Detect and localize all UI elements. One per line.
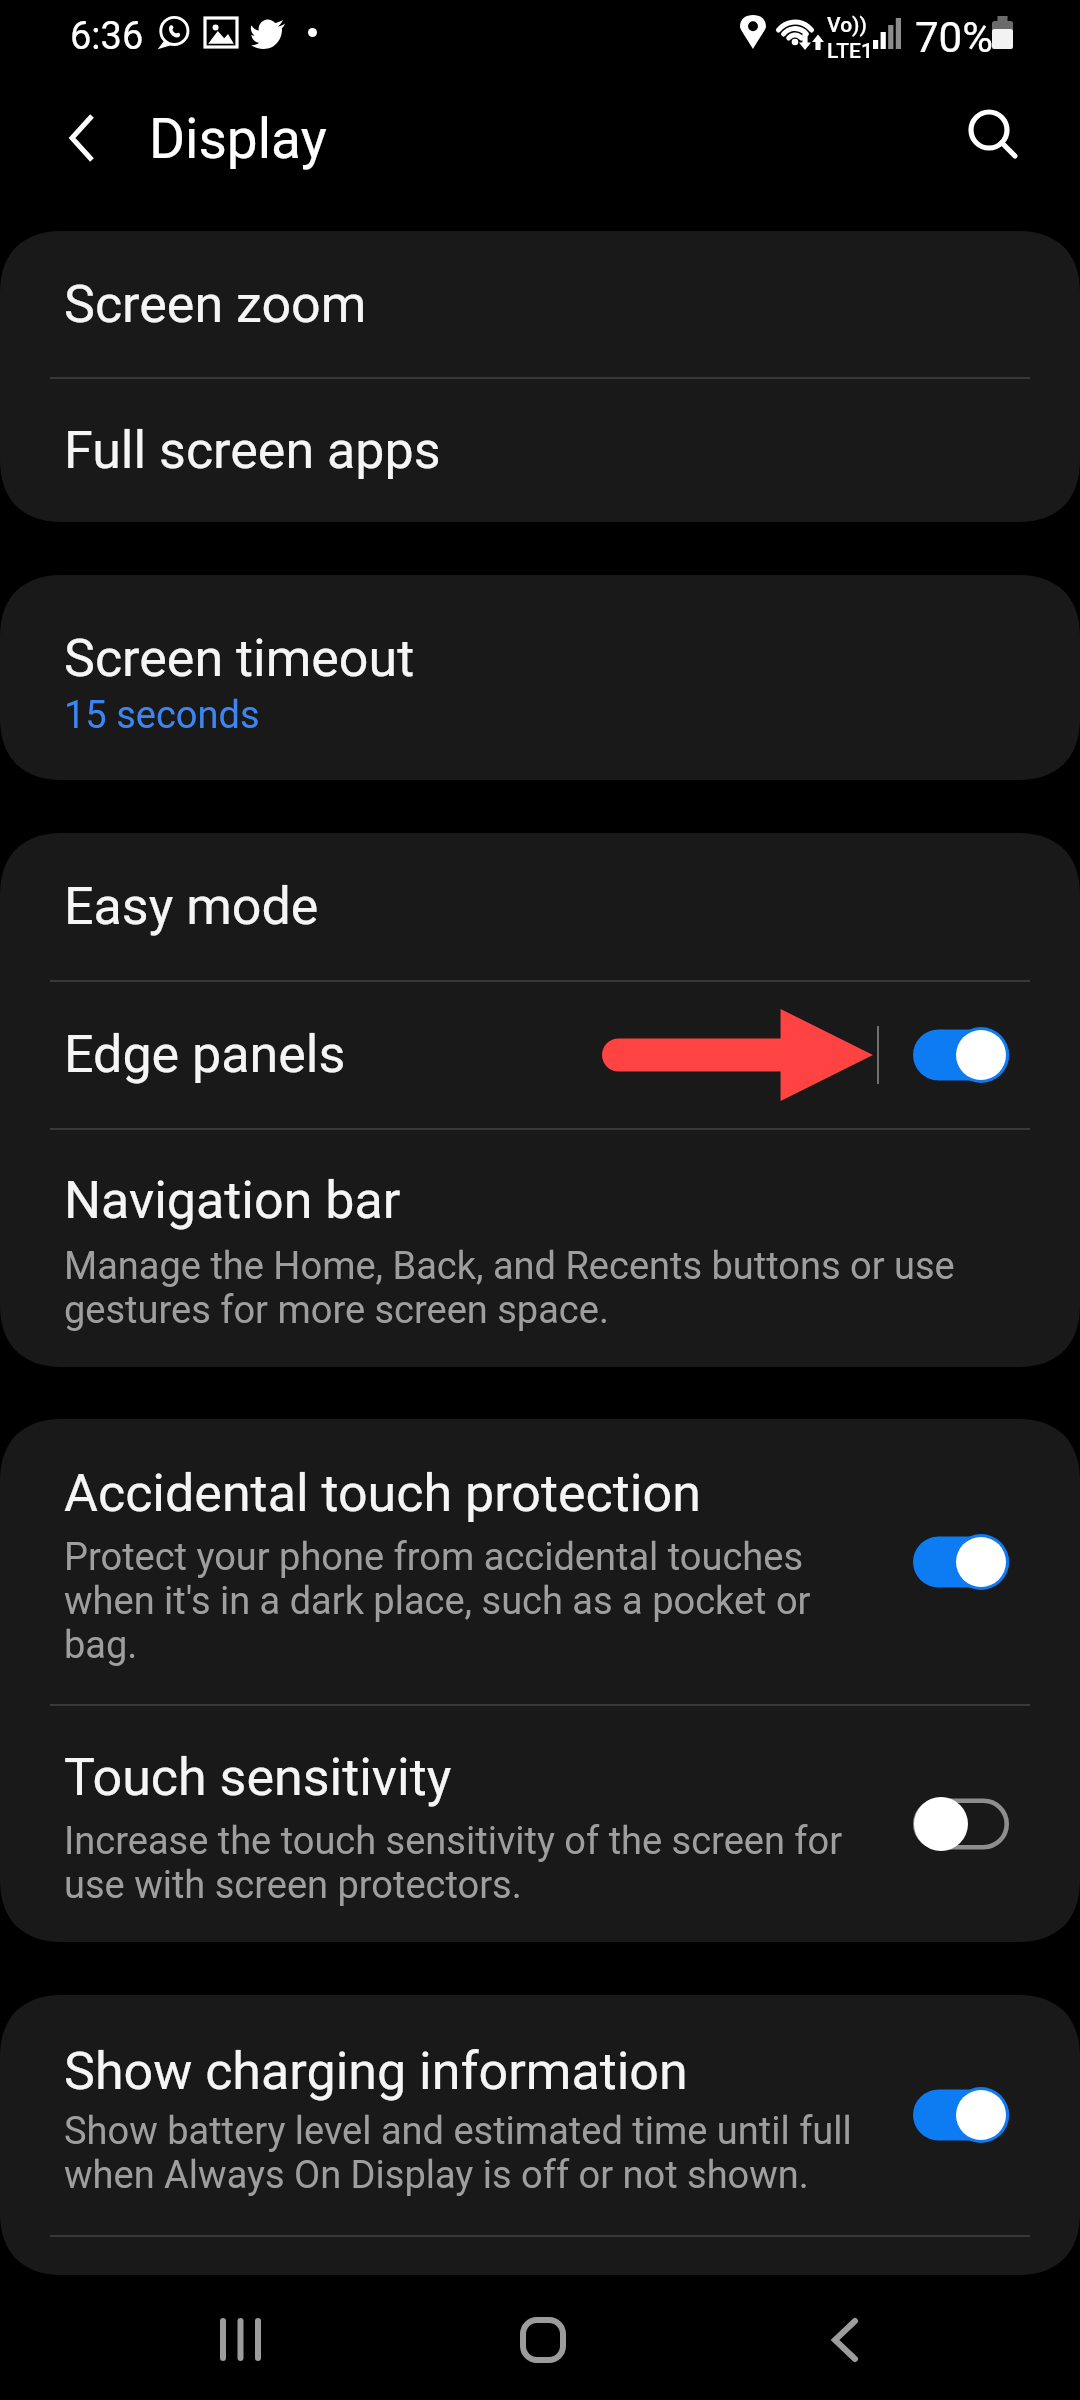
button[interactable]: Off [913, 1795, 1009, 1853]
staticText: Increase the touch sensitivity of the sc… [64, 1819, 843, 1907]
button[interactable]: Back [785, 2280, 905, 2400]
staticText: Full screen apps [64, 420, 441, 481]
button[interactable]: Home [483, 2280, 603, 2400]
staticText: Edge panels [64, 1024, 346, 1085]
button[interactable]: Full screen apps [0, 378, 1080, 522]
button[interactable]: Edge panels [0, 981, 1080, 1128]
button[interactable]: On [913, 2086, 1009, 2144]
staticText: Screen zoom [64, 274, 367, 335]
button[interactable]: Accidental touch protection [0, 1419, 1080, 1704]
staticText: Accidental touch protection [64, 1463, 701, 1524]
button[interactable]: Show charging information [0, 1995, 1080, 2235]
button[interactable]: Navigation bar [0, 1129, 1080, 1367]
staticText: Screen timeout [64, 628, 415, 689]
staticText: 70% [915, 13, 993, 62]
staticText: Easy mode [64, 876, 319, 937]
staticText: 15 seconds [64, 693, 260, 738]
staticText: Show battery level and estimated time un… [64, 2109, 852, 2197]
button[interactable]: Screen timeout [0, 575, 1080, 780]
staticText: Display [149, 107, 327, 171]
button[interactable]: Easy mode [0, 833, 1080, 980]
staticText: Show charging information [64, 2041, 688, 2102]
button[interactable]: Touch sensitivity [0, 1705, 1080, 1942]
button[interactable]: Search [941, 82, 1049, 190]
staticText: LTE1 [827, 39, 873, 64]
button[interactable]: Screen zoom [0, 231, 1080, 377]
staticText: Touch sensitivity [64, 1747, 452, 1808]
button[interactable]: Recent apps [180, 2279, 300, 2399]
staticText: 6:36 [70, 14, 144, 59]
button[interactable]: On [913, 1026, 1009, 1084]
staticText: Manage the Home, Back, and Recents butto… [64, 1244, 955, 1332]
staticText: Navigation bar [64, 1170, 401, 1231]
staticText: Protect your phone from accidental touch… [64, 1535, 811, 1667]
button[interactable]: On [913, 1533, 1009, 1591]
staticText: Vo)) [827, 13, 867, 38]
button[interactable]: Navigate up [28, 84, 136, 192]
